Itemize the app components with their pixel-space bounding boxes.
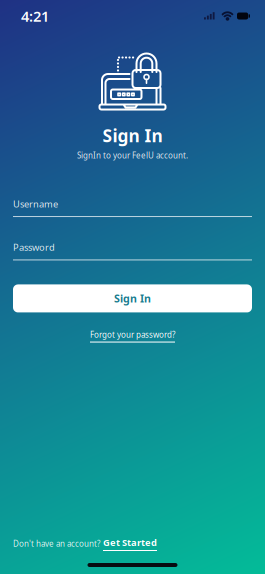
staticText: Username	[13, 198, 58, 210]
staticText: Forgot your password?	[90, 329, 175, 340]
button[interactable]: Forgot your password?	[90, 329, 175, 342]
button[interactable]: Get Started	[103, 536, 157, 551]
staticText: Password	[13, 241, 55, 253]
button[interactable]: Sign In	[13, 284, 252, 312]
staticText: 4:21	[21, 6, 49, 26]
staticText: SignIn to your FeelU account.	[77, 150, 188, 161]
staticText: Sign In	[114, 291, 151, 305]
staticText: Don't have an account?	[13, 538, 100, 549]
staticText: Sign In	[102, 124, 162, 147]
staticText: Get Started	[103, 536, 157, 548]
